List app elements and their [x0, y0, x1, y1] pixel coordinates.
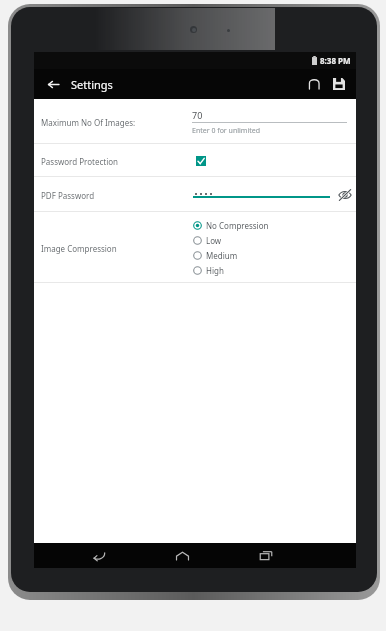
button[interactable]: Show password	[334, 184, 356, 206]
staticText: Image Compression	[41, 243, 193, 254]
staticText: Low	[206, 235, 222, 246]
staticText: Enter 0 for unlimited	[192, 126, 260, 136]
staticText: Maximum No Of Images:	[41, 117, 191, 128]
staticText: Medium	[206, 250, 238, 261]
button[interactable]: High	[193, 263, 224, 278]
button[interactable]: Undo	[303, 73, 325, 95]
button[interactable]: Home	[165, 543, 199, 568]
staticText: No Compression	[206, 220, 269, 231]
button[interactable]: No Compression	[193, 218, 269, 233]
button[interactable]: Low	[193, 233, 222, 248]
button[interactable]: Medium	[193, 248, 238, 263]
staticText: 8:38 PM	[320, 55, 351, 66]
button[interactable]: Save	[328, 73, 350, 95]
button[interactable]: Recent apps	[249, 543, 283, 568]
button[interactable]: Password Protection	[34, 146, 356, 176]
button[interactable]: Back	[43, 74, 63, 94]
staticText: 70	[192, 109, 203, 121]
button[interactable]: PDF Password	[34, 179, 356, 211]
staticText: Settings	[71, 77, 113, 92]
staticText: PDF Password	[41, 190, 193, 201]
button[interactable]: Maximum No Of Images:	[34, 102, 356, 143]
button[interactable]: Back	[81, 543, 115, 568]
staticText: High	[206, 265, 224, 276]
staticText: Password Protection	[41, 156, 193, 167]
